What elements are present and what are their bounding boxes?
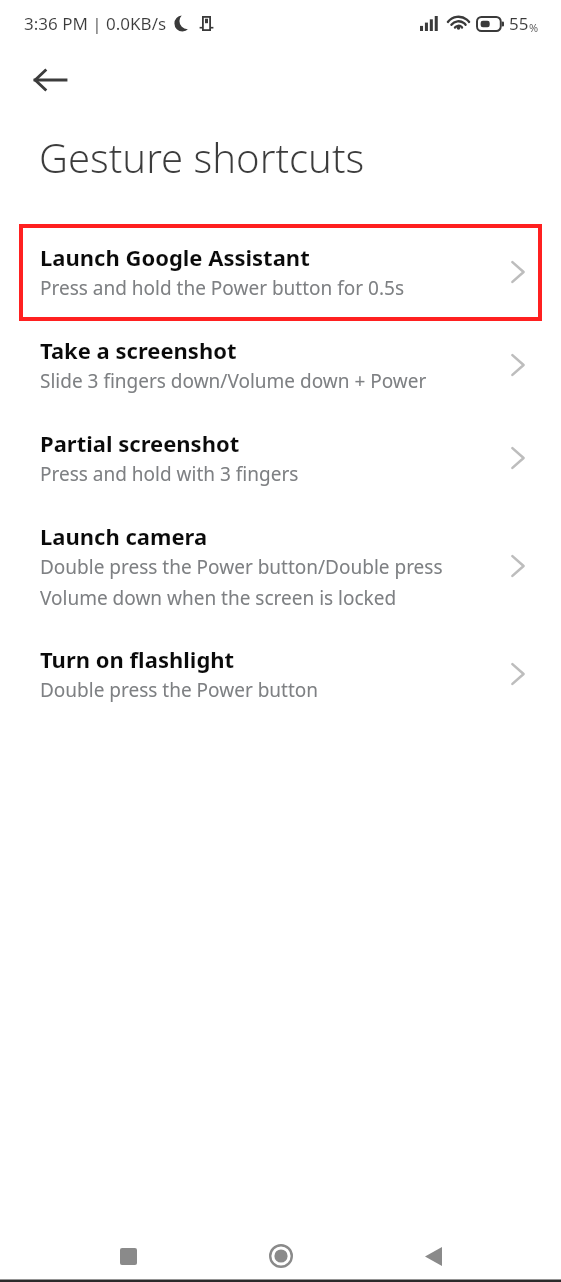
- staticText: Slide 3 fingers down/Volume down + Power: [40, 368, 427, 394]
- staticText: Press and hold the Power button for 0.5s: [40, 275, 404, 301]
- staticText: 55: [509, 12, 529, 35]
- staticText: Launch Google Assistant: [40, 242, 310, 272]
- button[interactable]: Home: [257, 1232, 305, 1280]
- staticText: Double press the Power button/Double pre…: [40, 554, 500, 610]
- button[interactable]: Recent apps: [104, 1232, 152, 1280]
- button[interactable]: Take a screenshot: [0, 319, 561, 412]
- staticText: Double press the Power button: [40, 677, 319, 703]
- staticText: %: [529, 20, 539, 35]
- button[interactable]: Partial screenshot: [0, 412, 561, 505]
- button[interactable]: Launch camera: [0, 505, 561, 628]
- button[interactable]: Back: [409, 1232, 457, 1280]
- button[interactable]: Turn on flashlight: [0, 628, 561, 721]
- staticText: Press and hold with 3 fingers: [40, 461, 299, 487]
- staticText: 3:36 PM | 0.0KB/s: [24, 12, 167, 35]
- staticText: Partial screenshot: [40, 428, 240, 458]
- button[interactable]: Launch Google Assistant: [21, 226, 540, 319]
- button[interactable]: Back: [22, 52, 78, 108]
- staticText: Take a screenshot: [40, 335, 237, 365]
- staticText: Launch camera: [40, 521, 208, 551]
- staticText: Gesture shortcuts: [39, 130, 365, 184]
- staticText: Turn on flashlight: [40, 644, 235, 674]
